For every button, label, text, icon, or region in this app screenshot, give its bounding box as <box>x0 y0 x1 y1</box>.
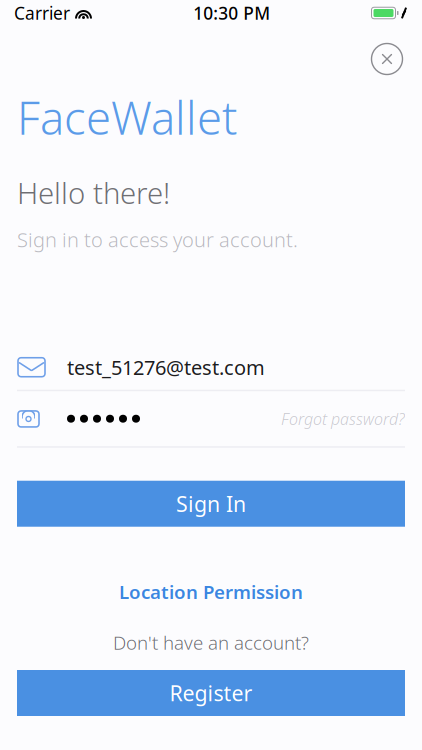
staticText: Forgot password? <box>281 408 405 429</box>
staticText: Register <box>169 679 252 707</box>
staticText: Location Permission <box>119 579 303 604</box>
staticText: FaceWallet <box>17 87 237 147</box>
button[interactable]: Location Permission <box>119 575 303 608</box>
staticText: Carrier <box>14 1 70 24</box>
staticText: Don't have an account? <box>113 630 309 655</box>
staticText: 10:30 PM <box>193 1 270 24</box>
staticText: Sign in to access your account. <box>17 226 298 253</box>
button[interactable]: Register <box>17 670 405 716</box>
button[interactable]: Close <box>365 37 409 81</box>
button[interactable]: Forgot password? <box>281 400 405 437</box>
staticText: test_51276@test.com <box>67 354 265 380</box>
staticText: Sign In <box>176 489 246 518</box>
button[interactable]: Sign In <box>17 481 405 527</box>
staticText: Hello there! <box>17 173 170 212</box>
